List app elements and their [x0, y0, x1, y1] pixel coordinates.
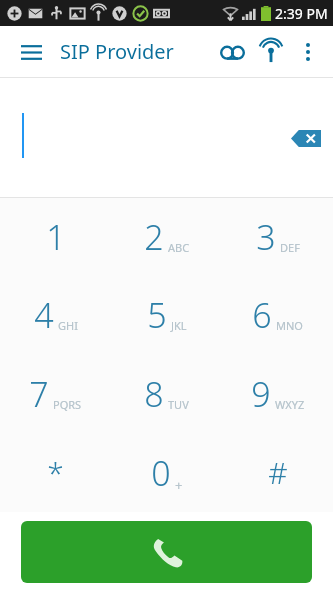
- staticText: DEF: [280, 240, 300, 255]
- button[interactable]: Call: [21, 521, 312, 583]
- staticText: JKL: [171, 318, 187, 333]
- button[interactable]: 4: [0, 276, 111, 354]
- staticText: 8: [144, 371, 164, 417]
- staticText: 4: [34, 292, 54, 338]
- button[interactable]: More options: [291, 35, 325, 69]
- button[interactable]: 3: [222, 198, 333, 276]
- staticText: PQRS: [53, 397, 82, 412]
- button[interactable]: 9: [222, 354, 333, 433]
- staticText: WXYZ: [275, 397, 305, 412]
- staticText: 9: [251, 371, 271, 417]
- button[interactable]: Backspace: [288, 123, 324, 153]
- button[interactable]: #: [222, 433, 333, 512]
- staticText: 7: [29, 371, 49, 417]
- staticText: 0: [151, 450, 171, 496]
- button[interactable]: Voicemail: [213, 33, 251, 71]
- staticText: 6: [252, 292, 272, 338]
- staticText: GHI: [58, 318, 78, 333]
- button[interactable]: 1: [0, 198, 111, 276]
- button[interactable]: *: [0, 433, 111, 512]
- staticText: ABC: [168, 240, 190, 255]
- staticText: #: [268, 452, 288, 493]
- button[interactable]: 8: [111, 354, 222, 433]
- staticText: 2: [144, 214, 164, 260]
- button[interactable]: SIP account status: [251, 32, 291, 72]
- staticText: TUV: [168, 397, 189, 412]
- staticText: 1: [46, 214, 66, 260]
- button[interactable]: 2: [111, 198, 222, 276]
- button[interactable]: Open navigation drawer: [14, 35, 48, 69]
- staticText: 5: [147, 292, 167, 338]
- staticText: *: [47, 452, 64, 493]
- staticText: +: [175, 476, 183, 494]
- staticText: MNO: [276, 318, 303, 333]
- staticText: 3: [256, 214, 276, 260]
- button[interactable]: 0: [111, 433, 222, 512]
- button[interactable]: 6: [222, 276, 333, 354]
- staticText: 2:39 PM: [275, 4, 328, 23]
- staticText: SIP Provider: [60, 38, 174, 65]
- button[interactable]: 5: [111, 276, 222, 354]
- button[interactable]: 7: [0, 354, 111, 433]
